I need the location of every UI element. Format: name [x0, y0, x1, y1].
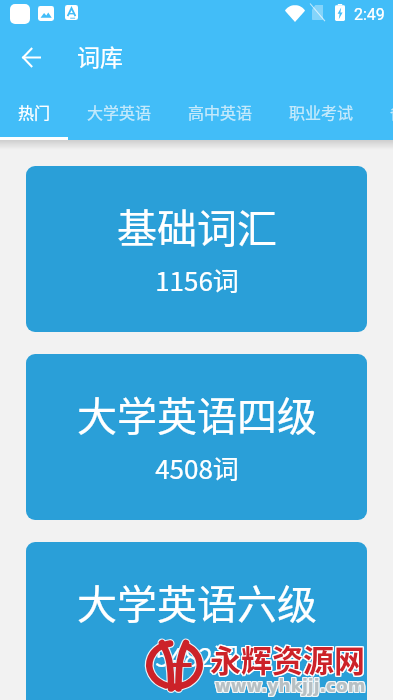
staticText: 大学英语六级: [77, 573, 317, 631]
staticText: www.yhkjjj.com: [214, 675, 365, 695]
button[interactable]: 热门: [0, 92, 69, 137]
staticText: www.yhkjjj.com: [216, 676, 367, 696]
staticText: 永辉资源网: [210, 635, 365, 680]
staticText: 基础词汇: [117, 197, 277, 255]
staticText: 永辉资源网: [211, 635, 366, 680]
staticText: www.yhkjjj.com: [214, 676, 365, 696]
staticText: www.yhkjjj.com: [214, 677, 365, 697]
staticText: 词库: [77, 39, 123, 72]
staticText: 永辉资源网: [210, 636, 365, 681]
button[interactable]: 大学英语六级: [26, 542, 367, 700]
button[interactable]: 大学英语四级: [26, 354, 367, 520]
staticText: 永辉资源网: [209, 636, 364, 681]
staticText: 永辉资源网: [211, 637, 366, 682]
staticText: 备考: [390, 100, 393, 123]
staticText: 高中英语: [188, 100, 253, 123]
staticText: 热门: [18, 100, 51, 123]
button[interactable]: 基础词汇: [26, 166, 367, 332]
staticText: 永辉资源网: [209, 635, 364, 680]
staticText: www.yhkjjj.com: [215, 676, 366, 696]
staticText: www.yhkjjj.com: [215, 675, 366, 695]
staticText: 大学英语四级: [77, 385, 317, 443]
staticText: 4508词: [155, 449, 239, 487]
button[interactable]: Back: [14, 40, 48, 74]
staticText: 永辉资源网: [210, 637, 365, 682]
staticText: www.yhkjjj.com: [216, 675, 367, 695]
staticText: 永辉资源网: [209, 637, 364, 682]
staticText: 永辉资源网: [211, 636, 366, 681]
staticText: 1156词: [155, 261, 239, 299]
button[interactable]: 备考: [372, 92, 393, 137]
staticText: 5482词: [155, 637, 239, 675]
staticText: www.yhkjjj.com: [216, 677, 367, 697]
staticText: www.yhkjjj.com: [215, 677, 366, 697]
staticText: 2:49: [354, 5, 385, 24]
button[interactable]: 大学英语: [69, 92, 170, 137]
staticText: 大学英语: [87, 100, 152, 123]
staticText: 职业考试: [289, 100, 354, 123]
button[interactable]: 高中英语: [170, 92, 271, 137]
button[interactable]: 职业考试: [271, 92, 372, 137]
